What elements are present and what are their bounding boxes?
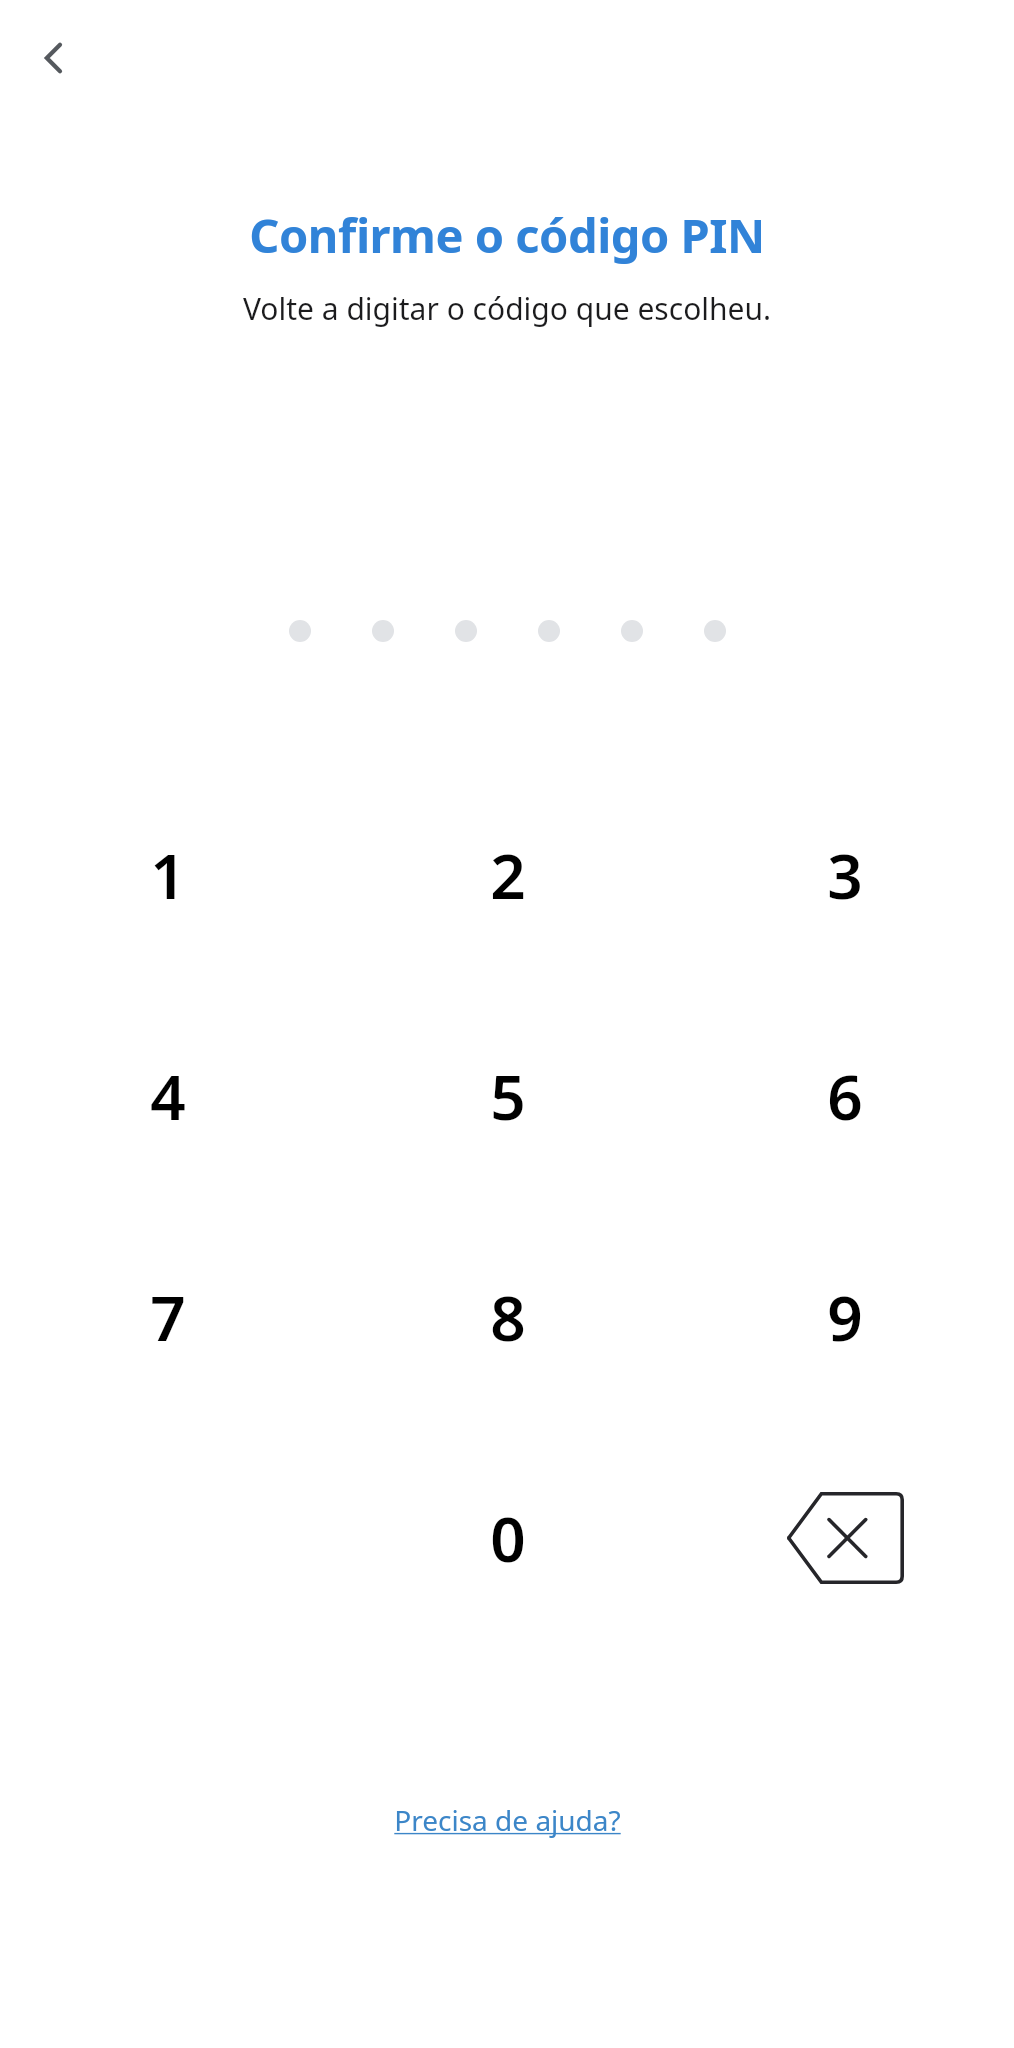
staticText: 6 xyxy=(827,1054,863,1138)
button[interactable]: 1 xyxy=(68,780,268,970)
button[interactable]: 4 xyxy=(68,1001,268,1191)
button[interactable]: 3 xyxy=(745,780,945,970)
staticText: 4 xyxy=(150,1054,186,1138)
button[interactable]: Precisa de ajuda? xyxy=(394,1801,621,1839)
staticText: Confirme o código PIN xyxy=(0,203,1014,267)
button[interactable]: 0 xyxy=(408,1443,608,1633)
staticText: Precisa de ajuda? xyxy=(394,1801,621,1839)
button[interactable]: Back xyxy=(22,26,86,90)
staticText: Volte a digitar o código que escolheu. xyxy=(0,288,1014,329)
button[interactable]: 8 xyxy=(408,1222,608,1412)
button[interactable]: 6 xyxy=(745,1001,945,1191)
staticText: 7 xyxy=(150,1275,186,1359)
staticText: 2 xyxy=(490,833,526,917)
staticText: 1 xyxy=(150,833,186,917)
button[interactable]: 5 xyxy=(408,1001,608,1191)
staticText: 0 xyxy=(490,1496,526,1580)
staticText: 9 xyxy=(827,1275,863,1359)
staticText: 8 xyxy=(490,1275,526,1359)
button[interactable]: 7 xyxy=(68,1222,268,1412)
staticText: 5 xyxy=(490,1054,526,1138)
staticText: 3 xyxy=(827,833,863,917)
button[interactable]: 9 xyxy=(745,1222,945,1412)
button[interactable]: Backspace xyxy=(745,1443,945,1633)
button[interactable]: 2 xyxy=(408,780,608,970)
